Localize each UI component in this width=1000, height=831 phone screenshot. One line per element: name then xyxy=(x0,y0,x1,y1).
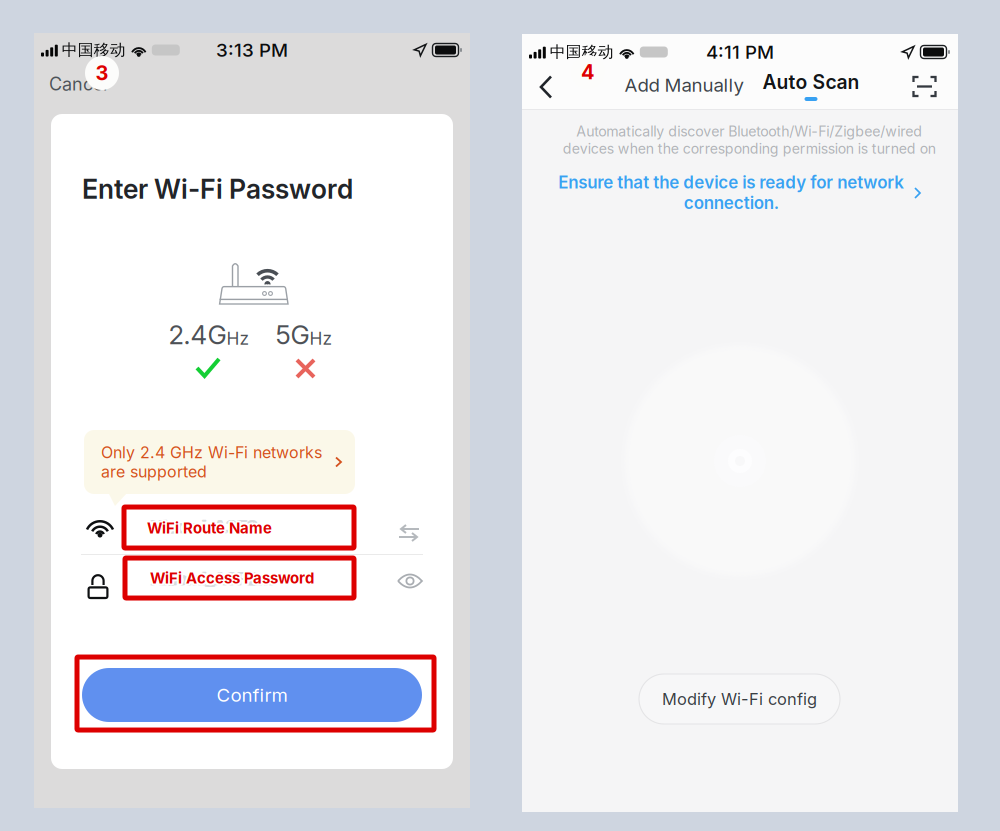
staticText: WiFi Route Name xyxy=(145,520,270,539)
staticText: Only 2.4 GHz Wi-Fi networks are supporte… xyxy=(101,443,322,481)
staticText: WiFi Route Name xyxy=(147,521,272,539)
staticText: Hz xyxy=(309,328,332,349)
staticText: Enter Wi-Fi Password xyxy=(82,173,353,205)
staticText: WiFi Access Password xyxy=(151,567,315,586)
staticText: Confirm xyxy=(216,684,287,706)
staticText: WiFi Route Name xyxy=(147,517,272,535)
staticText: WiFi Access Password xyxy=(148,569,312,587)
staticText: WiFi Route Name xyxy=(149,519,274,537)
staticText: Ensure that the device is ready for netw… xyxy=(558,172,904,213)
button[interactable]: Confirm xyxy=(82,668,422,722)
button[interactable]: Cancel xyxy=(34,65,122,103)
staticText: WiFi Route Name xyxy=(148,517,273,536)
button[interactable]: Modify Wi-Fi config xyxy=(639,674,840,724)
staticText: WiFi Access Password xyxy=(152,569,316,587)
staticText: Add Manually xyxy=(624,74,743,96)
staticText: WiFi Route Name xyxy=(145,519,270,537)
button[interactable]: Only 2.4 GHz Wi-Fi networks are supporte… xyxy=(84,430,355,494)
staticText: WiFi Access Password xyxy=(150,571,314,589)
button[interactable]: Ensure that the device is ready for netw… xyxy=(522,173,958,211)
staticText: WiFi Route Name xyxy=(145,517,270,536)
button[interactable]: Scan QR code xyxy=(901,63,948,110)
staticText: WiFi Route Name xyxy=(148,520,273,539)
staticText: 5G xyxy=(275,319,309,350)
staticText: WiFi Access Password xyxy=(148,570,312,589)
staticText: 3 xyxy=(95,61,108,85)
staticText: 2.4G xyxy=(168,319,226,350)
staticText: Auto Scan xyxy=(762,70,859,94)
staticText: Xiaomi_A3F2 xyxy=(151,516,258,537)
staticText: Xiaomi_A3F2 xyxy=(152,516,259,537)
staticText: WiFi Access Password xyxy=(150,569,314,587)
staticText: Xiaomi_A3F2m xyxy=(151,568,273,589)
staticText: Modify Wi-Fi config xyxy=(662,689,817,709)
staticText: WiFi Access Password xyxy=(151,570,315,589)
staticText: Automatically discover Bluetooth/Wi-Fi/Z… xyxy=(562,123,935,157)
staticText: Xiaomi_A3F2m xyxy=(151,568,273,589)
button[interactable]: Auto Scan xyxy=(761,72,861,108)
staticText: 3:13 PM xyxy=(216,39,288,61)
button[interactable]: Add Manually xyxy=(619,69,749,101)
staticText: WiFi Access Password xyxy=(148,567,312,586)
staticText: Xiaomi_A3F2m xyxy=(150,568,272,589)
staticText: WiFi Route Name xyxy=(147,519,272,537)
button[interactable]: Back xyxy=(526,65,566,109)
staticText: 4:11 PM xyxy=(706,41,774,63)
staticText: 中国移动 xyxy=(550,42,614,62)
staticText: Xiaomi_A3F2 xyxy=(151,516,258,537)
staticText: Cancel xyxy=(49,73,107,95)
staticText: WiFi Access Password xyxy=(150,567,314,585)
staticText: Xiaomi_A3F2 xyxy=(150,516,257,537)
staticText: Hz xyxy=(226,328,249,349)
staticText: 中国移动 xyxy=(62,40,126,60)
staticText: Xiaomi_A3F2m xyxy=(152,568,274,589)
staticText: 4 xyxy=(581,60,595,84)
